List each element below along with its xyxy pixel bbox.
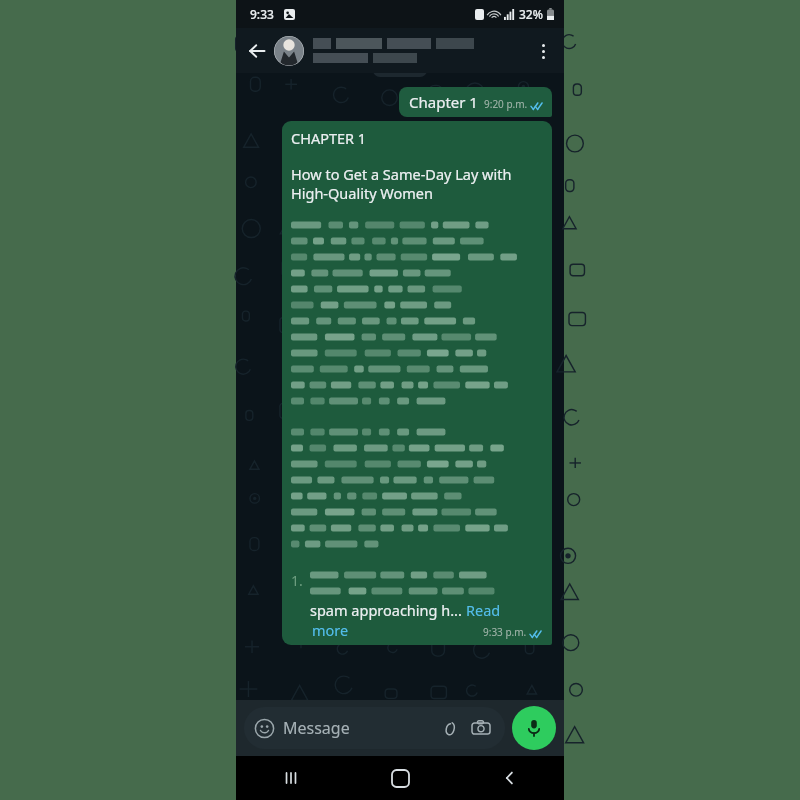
staticText: Chapter 1 (409, 92, 478, 112)
staticText: spam approaching h... (310, 600, 462, 620)
button[interactable]: Message (244, 707, 505, 749)
button[interactable] (274, 28, 474, 73)
button[interactable]: Read (466, 600, 501, 620)
button[interactable]: Recent apps (236, 756, 346, 800)
button[interactable]: more (312, 620, 349, 640)
button[interactable]: Record voice message (512, 706, 556, 750)
button[interactable]: Back (240, 34, 274, 68)
staticText: CHAPTER 1 (291, 128, 367, 148)
staticText: Message (283, 717, 350, 739)
button[interactable]: Back (455, 756, 564, 800)
button[interactable]: Camera (468, 715, 494, 741)
button[interactable]: Attach (436, 715, 462, 741)
staticText: 9:20 p.m. (484, 97, 528, 111)
button[interactable]: Chapter 1 (399, 87, 552, 117)
button[interactable]: CHAPTER 1 (282, 121, 552, 645)
staticText: 32% (519, 6, 543, 22)
staticText: 9:33 (250, 6, 274, 22)
staticText: How to Get a Same-Day Lay with High-Qual… (291, 164, 543, 203)
button[interactable]: Home (346, 756, 455, 800)
staticText: 1. (291, 571, 303, 590)
staticText: 9:33 p.m. (483, 625, 527, 639)
button[interactable]: More options (526, 34, 560, 68)
staticText: Today (384, 58, 416, 74)
